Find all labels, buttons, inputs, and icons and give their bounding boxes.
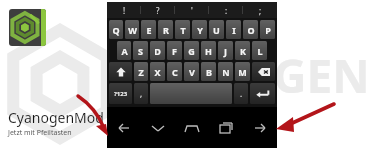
button[interactable]: Q: [109, 20, 123, 39]
button[interactable]: Y: [192, 20, 207, 39]
button[interactable]: Home: [175, 107, 209, 148]
staticText: CYANOGEN: [112, 44, 370, 107]
staticText: M: [238, 66, 247, 78]
staticText: O: [247, 24, 255, 36]
button[interactable]: ,: [134, 83, 148, 104]
button[interactable]: Space: [150, 83, 232, 104]
button[interactable]: L: [252, 41, 267, 60]
button[interactable]: S: [133, 41, 148, 60]
staticText: ,: [140, 88, 143, 99]
staticText: :: [225, 5, 228, 16]
staticText: CyanogenMod: [8, 108, 104, 127]
button[interactable]: X: [150, 62, 165, 81]
button[interactable]: CyanogenMod icon: [9, 9, 46, 46]
staticText: V: [189, 66, 195, 78]
staticText: !: [123, 5, 126, 16]
staticText: Jetzt mit Pfeiltasten: [8, 128, 72, 138]
button[interactable]: J: [218, 41, 233, 60]
button[interactable]: Enter: [250, 83, 275, 104]
staticText: P: [265, 24, 271, 36]
button[interactable]: .: [234, 83, 248, 104]
button[interactable]: Back: [107, 107, 141, 148]
staticText: R: [163, 24, 169, 36]
staticText: S: [138, 45, 143, 57]
staticText: .: [240, 88, 243, 99]
button[interactable]: K: [235, 41, 250, 60]
button[interactable]: W: [125, 20, 139, 39]
button[interactable]: I: [226, 20, 241, 39]
button[interactable]: Forward: [243, 107, 277, 148]
button[interactable]: U: [209, 20, 224, 39]
button[interactable]: C: [167, 62, 182, 81]
button[interactable]: H: [201, 41, 216, 60]
button[interactable]: V: [184, 62, 199, 81]
staticText: H: [205, 45, 212, 57]
staticText: N: [222, 66, 230, 78]
staticText: Q: [112, 24, 120, 36]
button[interactable]: ': [175, 2, 209, 18]
button[interactable]: R: [158, 20, 173, 39]
button[interactable]: Shift: [109, 62, 132, 81]
staticText: K: [240, 45, 246, 57]
staticText: I: [232, 24, 236, 36]
button[interactable]: G: [184, 41, 199, 60]
button[interactable]: ?: [141, 2, 175, 18]
button[interactable]: D: [150, 41, 165, 60]
staticText: Z: [138, 66, 144, 78]
button[interactable]: O: [243, 20, 258, 39]
button[interactable]: :: [209, 2, 243, 18]
button[interactable]: Backspace: [252, 62, 275, 81]
staticText: G: [188, 45, 195, 57]
staticText: B: [206, 66, 212, 78]
staticText: Y: [197, 24, 203, 36]
staticText: ?123: [114, 90, 128, 98]
button[interactable]: Down: [141, 107, 175, 148]
staticText: D: [154, 45, 161, 57]
button[interactable]: ?123: [109, 83, 132, 104]
staticText: E: [146, 24, 152, 36]
staticText: T: [180, 24, 186, 36]
staticText: J: [224, 45, 227, 57]
staticText: ;: [259, 5, 262, 16]
button[interactable]: ;: [243, 2, 277, 18]
button[interactable]: F: [167, 41, 182, 60]
staticText: ': [191, 5, 193, 16]
button[interactable]: P: [260, 20, 275, 39]
staticText: L: [257, 45, 263, 57]
staticText: W: [128, 24, 137, 36]
button[interactable]: M: [235, 62, 250, 81]
button[interactable]: B: [201, 62, 216, 81]
button[interactable]: N: [218, 62, 233, 81]
staticText: F: [172, 45, 177, 57]
staticText: C: [172, 66, 178, 78]
button[interactable]: Recents: [209, 107, 243, 148]
button[interactable]: Z: [134, 62, 148, 81]
staticText: A: [121, 45, 128, 57]
button[interactable]: T: [175, 20, 190, 39]
staticText: X: [154, 66, 161, 78]
staticText: U: [213, 24, 220, 36]
button[interactable]: E: [141, 20, 156, 39]
button[interactable]: A: [117, 41, 131, 60]
staticText: ?: [156, 5, 160, 16]
button[interactable]: !: [107, 2, 141, 18]
